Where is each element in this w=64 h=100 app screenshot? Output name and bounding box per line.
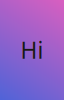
staticText: Hi xyxy=(20,35,43,65)
